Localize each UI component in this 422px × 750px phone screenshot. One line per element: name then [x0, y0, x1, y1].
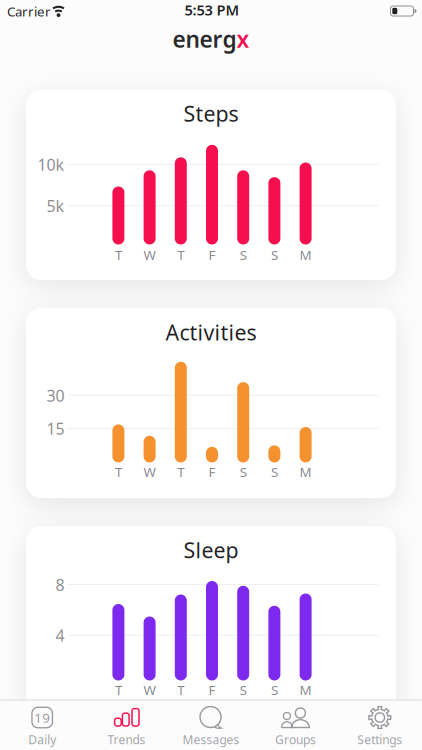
button[interactable]: 19 — [0, 700, 84, 750]
staticText: M — [300, 246, 312, 264]
staticText: S — [271, 681, 278, 699]
staticText: x — [236, 24, 249, 54]
staticText: T — [177, 246, 184, 264]
staticText: W — [144, 463, 156, 481]
staticText: 30 — [46, 385, 64, 406]
staticText: 10k — [37, 154, 64, 175]
staticText: T — [177, 463, 184, 481]
staticText: Steps — [183, 99, 238, 128]
staticText: 15 — [46, 418, 64, 439]
staticText: S — [240, 463, 247, 481]
staticText: T — [177, 681, 184, 699]
staticText: 5:53 PM — [184, 0, 239, 19]
staticText: Activities — [165, 318, 256, 346]
staticText: S — [271, 246, 278, 264]
staticText: Messages — [182, 731, 239, 747]
staticText: F — [208, 463, 215, 481]
staticText: F — [208, 246, 215, 264]
staticText: T — [115, 681, 122, 699]
staticText: S — [240, 246, 247, 264]
button[interactable]: Trends — [84, 700, 169, 750]
staticText: energ — [172, 24, 236, 54]
staticText: M — [300, 463, 312, 481]
staticText: T — [115, 463, 122, 481]
staticText: Trends — [108, 731, 146, 747]
staticText: S — [271, 463, 278, 481]
button[interactable]: Settings — [338, 700, 422, 750]
staticText: Carrier — [7, 2, 51, 20]
staticText: F — [208, 681, 215, 699]
staticText: 8 — [55, 574, 64, 595]
staticText: Groups — [275, 731, 316, 747]
staticText: 5k — [46, 195, 64, 216]
staticText: S — [240, 681, 247, 699]
staticText: M — [300, 681, 312, 699]
staticText: Daily — [28, 731, 56, 747]
staticText: W — [144, 681, 156, 699]
staticText: 4 — [55, 625, 64, 646]
button[interactable]: Groups — [253, 700, 338, 750]
staticText: T — [115, 246, 122, 264]
button[interactable]: Messages — [169, 700, 253, 750]
staticText: Settings — [357, 731, 402, 747]
staticText: Sleep — [183, 536, 238, 564]
staticText: 19 — [34, 709, 50, 726]
staticText: W — [144, 246, 156, 264]
